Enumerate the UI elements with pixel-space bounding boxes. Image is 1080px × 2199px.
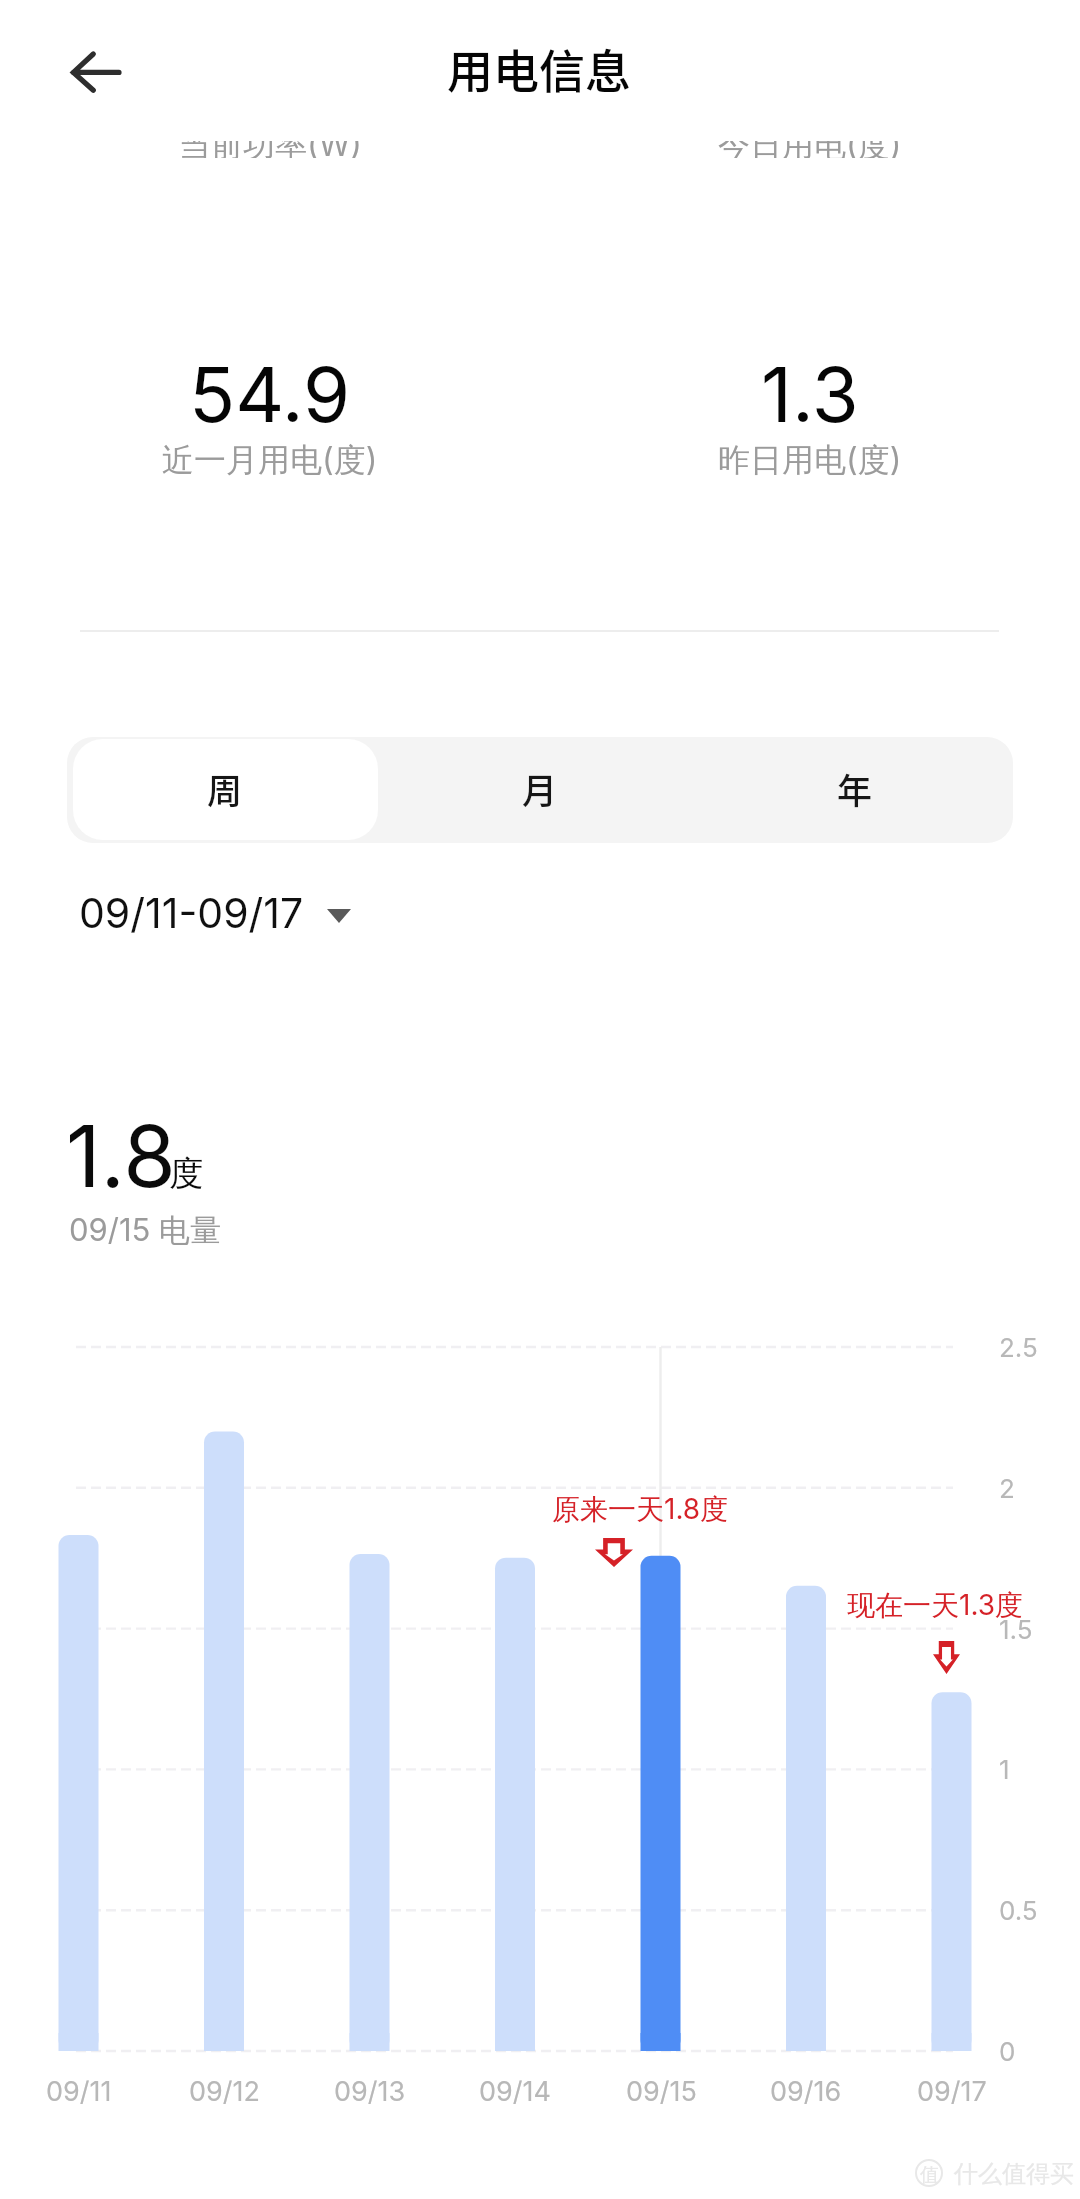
staticText: 09/16 [770,2075,842,2108]
staticText: 09/17 [917,2075,987,2108]
staticText: 09/11-09/17 [79,888,304,938]
staticText: 近一月用电(度) [162,440,378,481]
staticText: 09/13 [334,2075,406,2108]
staticText: 1.8 [66,1105,176,1208]
staticText: 周 [207,763,243,814]
staticText: 用电信息 [447,35,631,102]
button[interactable]: 09/11-09/17 [79,888,351,938]
staticText: 0.5 [999,1895,1038,1926]
staticText: 09/14 [479,2075,551,2108]
staticText: 现在一天1.3度 [847,1588,1023,1623]
staticText: 2.5 [999,1332,1038,1363]
staticText: 09/11 [46,2075,112,2108]
staticText: 今日用电(度) [718,125,902,166]
staticText: 月 [522,763,558,814]
staticText: 09/15 [626,2075,697,2108]
staticText: 2 [999,1473,1015,1504]
staticText: 1.5 [999,1614,1033,1645]
staticText: 1 [999,1754,1010,1785]
staticText: 54.9 [189,348,351,440]
button[interactable]: 周 [67,737,382,843]
button[interactable]: 年 [697,737,1013,843]
button[interactable]: Back [48,22,144,118]
staticText: 度 [169,1152,203,1195]
staticText: 原来一天1.8度 [552,1492,729,1527]
staticText: 09/15 电量 [69,1211,222,1250]
staticText: 什么值得买 [954,2159,1074,2189]
button[interactable]: 月 [382,737,697,843]
staticText: 值 [920,2163,939,2187]
staticText: 1.3 [761,348,859,440]
staticText: 昨日用电(度) [718,440,902,481]
staticText: 09/12 [189,2075,260,2108]
staticText: 0 [999,2036,1016,2067]
staticText: 年 [837,763,873,814]
staticText: 当前功率(W) [179,125,362,166]
